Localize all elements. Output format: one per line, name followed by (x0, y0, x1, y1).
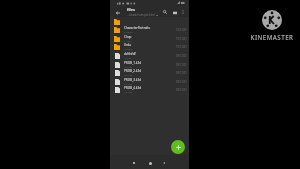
staticText: 6.8 MB (124, 73, 133, 76)
staticText: 12 KB (124, 56, 131, 59)
staticText: 09/12/21 (176, 88, 187, 92)
button[interactable]: dsfdsfdf (110, 51, 189, 60)
button[interactable]: CharacterPortraits (110, 25, 189, 34)
button[interactable]: PROB_4.k3d (110, 85, 189, 94)
staticText: PROB_1.k3d (124, 61, 141, 65)
button[interactable]: Back (114, 9, 121, 16)
staticText: 09/12/21 (176, 80, 187, 84)
staticText: CharacterPortraits (124, 26, 150, 30)
button[interactable]: More options (179, 8, 187, 16)
staticText: 5 items (124, 30, 133, 33)
button[interactable]: Search (160, 7, 170, 17)
staticText: KINEMASTER (247, 33, 297, 41)
staticText: 4.2 MB (124, 65, 133, 68)
button[interactable]: PROB_1.k3d (110, 60, 189, 69)
button[interactable]: Back (160, 159, 168, 167)
staticText: PROB_2.k3d (124, 69, 141, 73)
staticText: 10/12/21 (176, 45, 187, 49)
staticText: Urdu (124, 43, 132, 47)
staticText: 10/12/21 (176, 28, 187, 32)
staticText: 09/12/21 (176, 54, 187, 58)
staticText: 09/12/21 (176, 63, 187, 67)
staticText: 1 item (124, 39, 132, 42)
button[interactable]: Home (146, 159, 154, 167)
staticText: Chup (124, 35, 132, 39)
button[interactable]: PROB_3.k3d (110, 77, 189, 86)
staticText: 2.1 MB (124, 82, 133, 85)
staticText: …/data/com.pts.kine (127, 13, 155, 17)
staticText: 10/12/21 (176, 37, 187, 41)
staticText: 3 items (124, 47, 133, 50)
staticText: 09/12/21 (176, 71, 187, 75)
button[interactable]: Add (171, 140, 185, 154)
button[interactable]: Urdu (110, 42, 189, 51)
staticText: dsfdsfdf (124, 52, 136, 56)
staticText: files (127, 7, 136, 13)
button[interactable]: PROB_2.k3d (110, 68, 189, 77)
button[interactable] (110, 17, 189, 26)
staticText: 7.6 MB (124, 90, 133, 93)
staticText: PROB_3.k3d (124, 78, 141, 82)
button[interactable]: Recents (130, 159, 138, 167)
button[interactable]: Chup (110, 34, 189, 43)
button[interactable]: View mode (170, 8, 179, 17)
staticText: PROB_4.k3d (124, 86, 141, 90)
